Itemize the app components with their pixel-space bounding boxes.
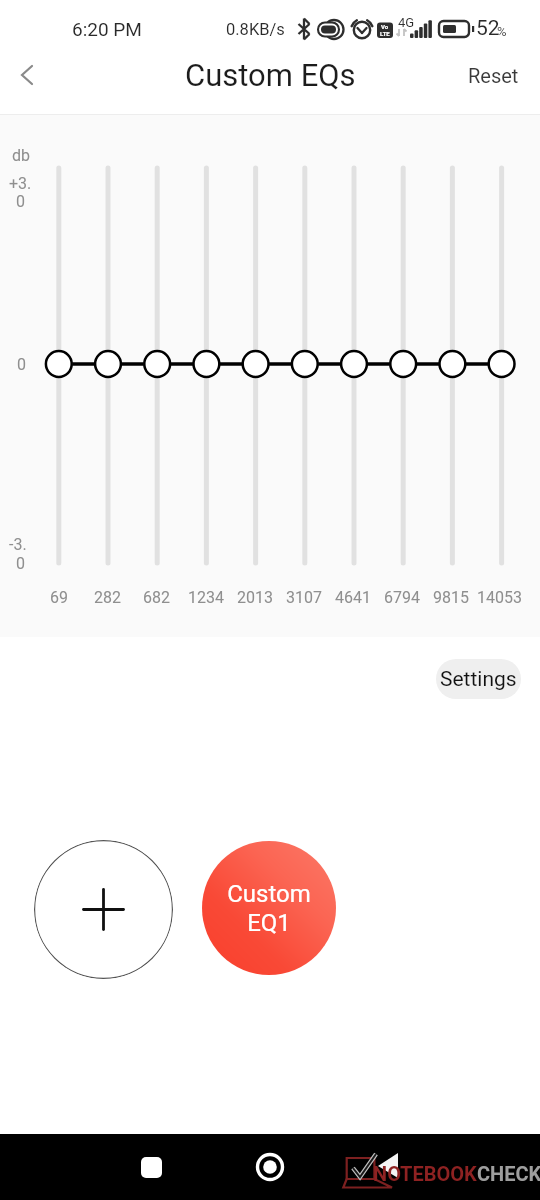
button[interactable]: 2013 Hz band (241, 158, 271, 574)
button[interactable]: 1234 Hz band (192, 158, 222, 574)
staticText: Custom EQ1 (227, 880, 311, 937)
staticText: 682 (143, 588, 170, 607)
staticText: NOTEBOOK (373, 1162, 477, 1185)
button[interactable]: 69 Hz band (44, 158, 74, 574)
button[interactable]: 14053 Hz band (487, 158, 517, 574)
staticText: Settings (440, 667, 517, 692)
button[interactable]: 282 Hz band (93, 158, 123, 574)
staticText: 282 (94, 588, 121, 607)
staticText: Custom EQs (185, 57, 356, 93)
staticText: 0 (16, 192, 25, 211)
button[interactable]: 6794 Hz band (388, 158, 418, 574)
staticText: CHECK (477, 1162, 540, 1185)
staticText: -3. (9, 535, 27, 554)
staticText: 6:20 PM (72, 18, 142, 40)
staticText: Reset (468, 64, 519, 87)
button[interactable]: Add custom EQ (34, 840, 173, 979)
staticText: Vo (381, 23, 389, 30)
button[interactable]: Recents (125, 1141, 177, 1193)
staticText: LTE (380, 30, 390, 37)
staticText: 69 (50, 588, 68, 607)
button[interactable]: Back (0, 47, 56, 103)
staticText: db (12, 146, 31, 165)
button[interactable]: 682 Hz band (142, 158, 172, 574)
staticText: 6794 (384, 588, 420, 607)
staticText: 9815 (433, 588, 469, 607)
staticText: 1234 (188, 588, 224, 607)
staticText: 0 (16, 554, 25, 573)
staticText: 14053 (477, 588, 522, 607)
staticText: % (497, 24, 507, 39)
button[interactable]: 9815 Hz band (438, 158, 468, 574)
button[interactable]: Home (244, 1141, 296, 1193)
staticText: +3. (9, 174, 32, 193)
button[interactable]: Custom EQ1 (202, 841, 336, 975)
staticText: 2013 (237, 588, 273, 607)
staticText: 52 (476, 16, 500, 41)
button[interactable]: Reset (460, 56, 527, 95)
staticText: 0.8KB/s (226, 20, 285, 39)
button[interactable]: 4641 Hz band (339, 158, 369, 574)
button[interactable]: Settings (436, 659, 521, 699)
staticText: 4641 (335, 588, 371, 607)
staticText: 0 (17, 355, 26, 374)
button[interactable]: 3107 Hz band (290, 158, 320, 574)
staticText: 4G (398, 15, 415, 30)
staticText: 3107 (286, 588, 322, 607)
